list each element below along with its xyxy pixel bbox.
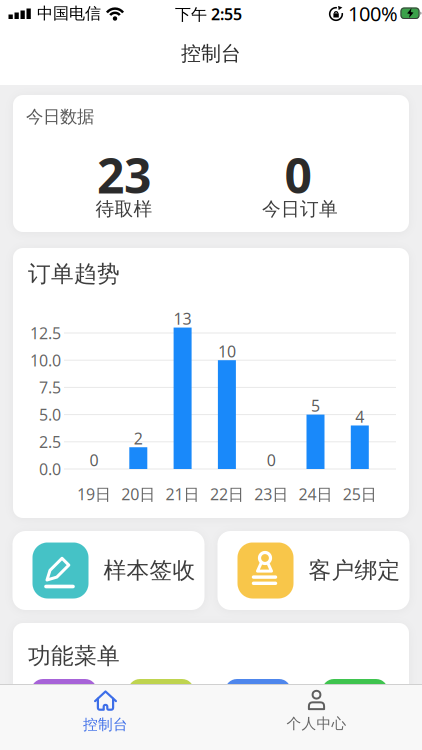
staticText: 4 — [355, 406, 364, 427]
staticText: 23日 — [254, 483, 288, 505]
staticText: 下午 2:55 — [175, 3, 242, 25]
staticText: 客户绑定 — [308, 557, 400, 584]
button[interactable] — [225, 679, 291, 734]
staticText: 0 — [284, 143, 311, 207]
staticText: 21日 — [166, 483, 200, 505]
staticText: 2.5 — [39, 431, 61, 452]
staticText: 样本签收 — [103, 557, 195, 584]
button[interactable]: 个人中心 — [211, 680, 422, 750]
staticText: 控制台 — [83, 716, 128, 734]
staticText: 5 — [311, 395, 320, 416]
staticText: 0 — [89, 449, 98, 471]
staticText: 7.5 — [39, 377, 61, 398]
staticText: 23 — [97, 143, 151, 207]
staticText: 个人中心 — [286, 715, 346, 733]
button[interactable]: 客户绑定 — [217, 531, 409, 610]
staticText: 13 — [174, 308, 192, 329]
staticText: 22日 — [210, 483, 244, 505]
staticText: 25日 — [343, 483, 377, 505]
staticText: 中国电信 — [37, 4, 101, 23]
staticText: 控制台 — [181, 41, 241, 66]
staticText: 5.0 — [39, 404, 61, 425]
staticText: 2 — [134, 428, 143, 449]
staticText: 功能菜单 — [28, 642, 120, 670]
button[interactable] — [128, 679, 194, 734]
staticText: 12.5 — [30, 322, 61, 344]
staticText: 订单趋势 — [28, 260, 120, 288]
staticText: 今日订单 — [262, 197, 338, 220]
staticText: 今日数据 — [26, 106, 94, 127]
button[interactable] — [322, 679, 388, 734]
staticText: 0.0 — [39, 458, 61, 480]
staticText: 0 — [267, 449, 276, 471]
button[interactable] — [31, 679, 97, 734]
staticText: 24日 — [298, 483, 332, 505]
staticText: 10.0 — [30, 350, 61, 371]
staticText: 10 — [218, 341, 236, 362]
staticText: 20日 — [121, 483, 155, 505]
button[interactable]: 样本签收 — [12, 531, 204, 610]
staticText: 19日 — [77, 483, 111, 505]
staticText: 100% — [348, 0, 398, 27]
button[interactable]: 控制台 — [0, 680, 211, 750]
staticText: 待取样 — [95, 197, 152, 220]
